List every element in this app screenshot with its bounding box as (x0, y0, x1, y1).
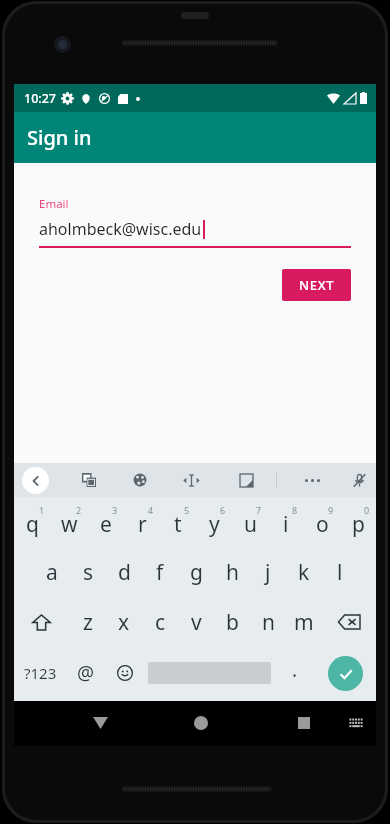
staticText: t (174, 510, 182, 539)
staticText: k (298, 558, 310, 587)
staticText: l (337, 558, 343, 587)
button[interactable]: p (340, 497, 376, 547)
staticText: 9 (328, 504, 334, 516)
staticText: 3 (112, 504, 118, 516)
staticText: g (190, 558, 203, 587)
button[interactable]: Shift (14, 597, 69, 647)
staticText: a (46, 558, 58, 587)
staticText: . (292, 657, 298, 683)
staticText: d (118, 558, 131, 587)
staticText: x (118, 608, 130, 637)
staticText: m (294, 608, 314, 637)
button[interactable]: More options (299, 467, 325, 493)
staticText: 2 (76, 504, 82, 516)
staticText: y (209, 510, 220, 539)
button[interactable]: Done (314, 647, 376, 699)
button[interactable]: Home (191, 713, 211, 733)
staticText: 10:27 (24, 90, 57, 107)
button[interactable]: Theme (127, 467, 153, 493)
staticText: 4 (148, 504, 154, 516)
button[interactable]: Emoji (105, 647, 144, 699)
staticText: Sign in (27, 124, 92, 151)
button[interactable]: Back (90, 713, 110, 733)
button[interactable]: m (286, 597, 322, 647)
button[interactable]: . (275, 647, 314, 699)
button[interactable]: Back (22, 467, 49, 494)
button[interactable]: c (142, 597, 178, 647)
button[interactable]: a (33, 547, 70, 597)
button[interactable]: s (70, 547, 106, 597)
staticText: Email (39, 196, 69, 212)
button[interactable]: e (88, 497, 124, 547)
button[interactable]: Voice input off (346, 467, 372, 493)
staticText: NEXT (299, 276, 335, 294)
button[interactable]: NEXT (282, 269, 351, 301)
button[interactable]: h (214, 547, 250, 597)
staticText: f (156, 558, 164, 587)
button[interactable]: o (304, 497, 340, 547)
staticText: ?123 (24, 663, 57, 683)
button[interactable]: Clipboard (233, 467, 259, 493)
button[interactable]: ?123 (14, 647, 67, 699)
staticText: q (26, 510, 39, 539)
staticText: 6 (220, 504, 226, 516)
button[interactable]: Translate (76, 467, 102, 493)
button[interactable]: u (232, 497, 268, 547)
button[interactable]: Text editing (178, 467, 204, 493)
button[interactable]: i (268, 497, 304, 547)
staticText: v (191, 608, 202, 637)
staticText: o (316, 510, 329, 539)
button[interactable]: t (160, 497, 196, 547)
staticText: 0 (364, 504, 370, 516)
button[interactable]: Space (144, 647, 275, 699)
button[interactable]: r (124, 497, 160, 547)
staticText: n (262, 608, 275, 637)
button[interactable]: Recents (294, 713, 314, 733)
staticText: j (265, 558, 271, 587)
staticText: w (61, 510, 78, 539)
button[interactable]: w (51, 497, 88, 547)
button[interactable]: Switch keyboard (346, 713, 366, 733)
staticText: 7 (256, 504, 262, 516)
staticText: e (100, 510, 112, 539)
button[interactable]: @ (67, 647, 105, 699)
button[interactable]: f (142, 547, 178, 597)
button[interactable]: j (250, 547, 286, 597)
staticText: p (352, 510, 365, 539)
staticText: c (155, 608, 166, 637)
button[interactable]: g (178, 547, 214, 597)
button[interactable]: v (178, 597, 214, 647)
staticText: z (83, 608, 93, 637)
staticText: r (138, 510, 147, 539)
staticText: @ (77, 660, 95, 686)
button[interactable]: l (322, 547, 358, 597)
button[interactable]: b (214, 597, 250, 647)
button[interactable]: n (250, 597, 286, 647)
button[interactable]: Backspace (322, 597, 376, 647)
button[interactable]: q (14, 497, 51, 547)
staticText: 5 (184, 504, 190, 516)
button[interactable]: k (286, 547, 322, 597)
staticText: h (226, 558, 239, 587)
staticText: s (83, 558, 94, 587)
staticText: aholmbeck@wisc.edu (39, 218, 202, 240)
staticText: 1 (39, 504, 45, 516)
staticText: b (226, 608, 239, 637)
button[interactable]: x (106, 597, 142, 647)
staticText: i (283, 510, 289, 539)
button[interactable]: y (196, 497, 232, 547)
button[interactable]: d (106, 547, 142, 597)
button[interactable]: z (69, 597, 106, 647)
staticText: 8 (292, 504, 298, 516)
staticText: u (244, 510, 257, 539)
